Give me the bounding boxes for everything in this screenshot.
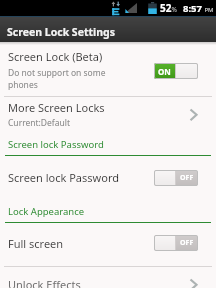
staticText: Current:Default: [8, 117, 71, 129]
button[interactable]: Screen Lock (Beta): [0, 45, 216, 96]
staticText: Screen lock Password: [8, 138, 104, 151]
staticText: Lock Appearance: [8, 205, 85, 218]
staticText: 8:57 PM: [183, 2, 214, 15]
staticText: Screen lock Password: [8, 170, 119, 185]
staticText: Do not support on some phones: [8, 67, 106, 91]
button[interactable]: ON: [154, 63, 198, 79]
staticText: Screen Lock Settings: [7, 25, 115, 39]
button[interactable]: Full screen: [0, 224, 216, 266]
button[interactable]: OFF: [154, 235, 198, 251]
staticText: OFF: [180, 173, 194, 183]
button[interactable]: Screen lock Password: [0, 157, 216, 198]
button[interactable]: More Screen Locks: [0, 97, 216, 138]
staticText: Unlock Effects: [8, 277, 81, 288]
staticText: ON: [158, 66, 171, 77]
staticText: OFF: [180, 238, 194, 248]
button[interactable]: OFF: [154, 170, 198, 186]
staticText: Full screen: [8, 236, 64, 251]
staticText: Screen Lock (Beta): [8, 49, 103, 64]
button[interactable]: Unlock Effects: [0, 267, 216, 288]
staticText: More Screen Locks: [8, 100, 105, 115]
staticText: 52%: [160, 1, 177, 15]
